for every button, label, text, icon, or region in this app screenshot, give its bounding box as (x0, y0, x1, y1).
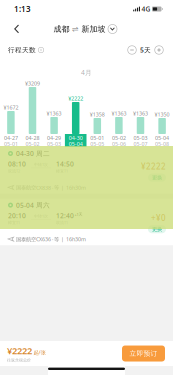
staticText: 新加坡 (81, 24, 105, 34)
staticText: 04-30 (69, 134, 83, 142)
staticText: 05-04 (155, 134, 169, 142)
staticText: ¥2222 (68, 95, 83, 102)
staticText: 05-01 (90, 134, 104, 142)
button[interactable]: Switch route (105, 22, 119, 36)
staticText: ¥3209 (25, 80, 40, 87)
staticText: 05-05 (90, 140, 104, 148)
staticText: ¥2222 (7, 344, 32, 357)
staticText: 更换 (152, 174, 162, 181)
staticText: 05-08 (155, 140, 169, 148)
staticText: 4月 (81, 68, 92, 77)
button[interactable]: ¥1363 (43, 60, 65, 147)
staticText: 04-28 (25, 134, 39, 142)
staticText: 国泰航空CX636 · 等 | 16h30m (16, 236, 86, 243)
button[interactable]: Fewer days (126, 44, 138, 56)
staticText: 05-04 (69, 140, 83, 148)
button[interactable]: More days (153, 44, 165, 56)
staticText: ¥1672 (3, 104, 18, 111)
button[interactable]: Back (6, 18, 28, 40)
button[interactable]: 04-30 周二 (0, 147, 173, 194)
staticText: 5天 (140, 46, 151, 54)
staticText: ¥1363 (47, 110, 62, 117)
staticText: 04-29 (47, 134, 61, 142)
staticText: 05-02 (25, 140, 39, 148)
staticText: +1天 (74, 212, 82, 217)
staticText: 05-06 (112, 140, 126, 148)
staticText: 往返含税总价 (7, 358, 31, 363)
staticText: +¥0 (151, 213, 166, 223)
button[interactable]: ¥1672 (0, 60, 22, 147)
button[interactable]: ¥1363 (108, 60, 130, 147)
staticText: 更换 (152, 226, 162, 233)
staticText: 05-02 (112, 134, 126, 142)
staticText: 4G (141, 5, 150, 13)
button[interactable]: ¥1358 (86, 60, 108, 147)
button[interactable]: ¥1363 (130, 60, 151, 147)
staticText: 20:10 (8, 211, 26, 220)
button[interactable]: ¥2222 (65, 60, 86, 147)
staticText: 行程天数 (8, 46, 36, 54)
staticText: 成都 (53, 24, 69, 34)
button[interactable]: 05-04 周六 (0, 199, 173, 245)
staticText: 起/张 (33, 349, 45, 356)
staticText: 08:10 (8, 160, 26, 168)
staticText: 05-03 (133, 134, 147, 142)
staticText: ¥2222 (141, 161, 166, 172)
staticText: 立即预订 (129, 349, 157, 358)
button[interactable]: ¥3209 (22, 60, 43, 147)
staticText: ¥1363 (111, 110, 126, 117)
button[interactable]: ¥1350 (151, 60, 173, 147)
staticText: ⇌ (72, 24, 79, 34)
staticText: 05-07 (133, 140, 147, 148)
staticText: 14:50 (56, 160, 74, 168)
staticText: ¥1350 (155, 111, 170, 118)
staticText: 国泰航空CX838 · 等 | 16h30m (16, 184, 86, 191)
staticText: 05-03 (47, 140, 61, 148)
staticText: ¥1363 (133, 110, 148, 117)
staticText: 04-27 (4, 134, 18, 142)
staticText: 樟宜T1 (8, 220, 20, 225)
button[interactable]: 更换 (148, 225, 166, 233)
staticText: 05-04 周六 (16, 201, 50, 210)
staticText: ¥1358 (90, 111, 105, 118)
button[interactable]: 立即预订 (122, 345, 165, 361)
button[interactable]: 更换 (148, 174, 166, 182)
staticText: 05-01 (4, 140, 18, 148)
staticText: 12:40 (56, 211, 74, 220)
staticText: 04-30 周二 (16, 149, 50, 158)
staticText: 1:13 (14, 4, 31, 14)
